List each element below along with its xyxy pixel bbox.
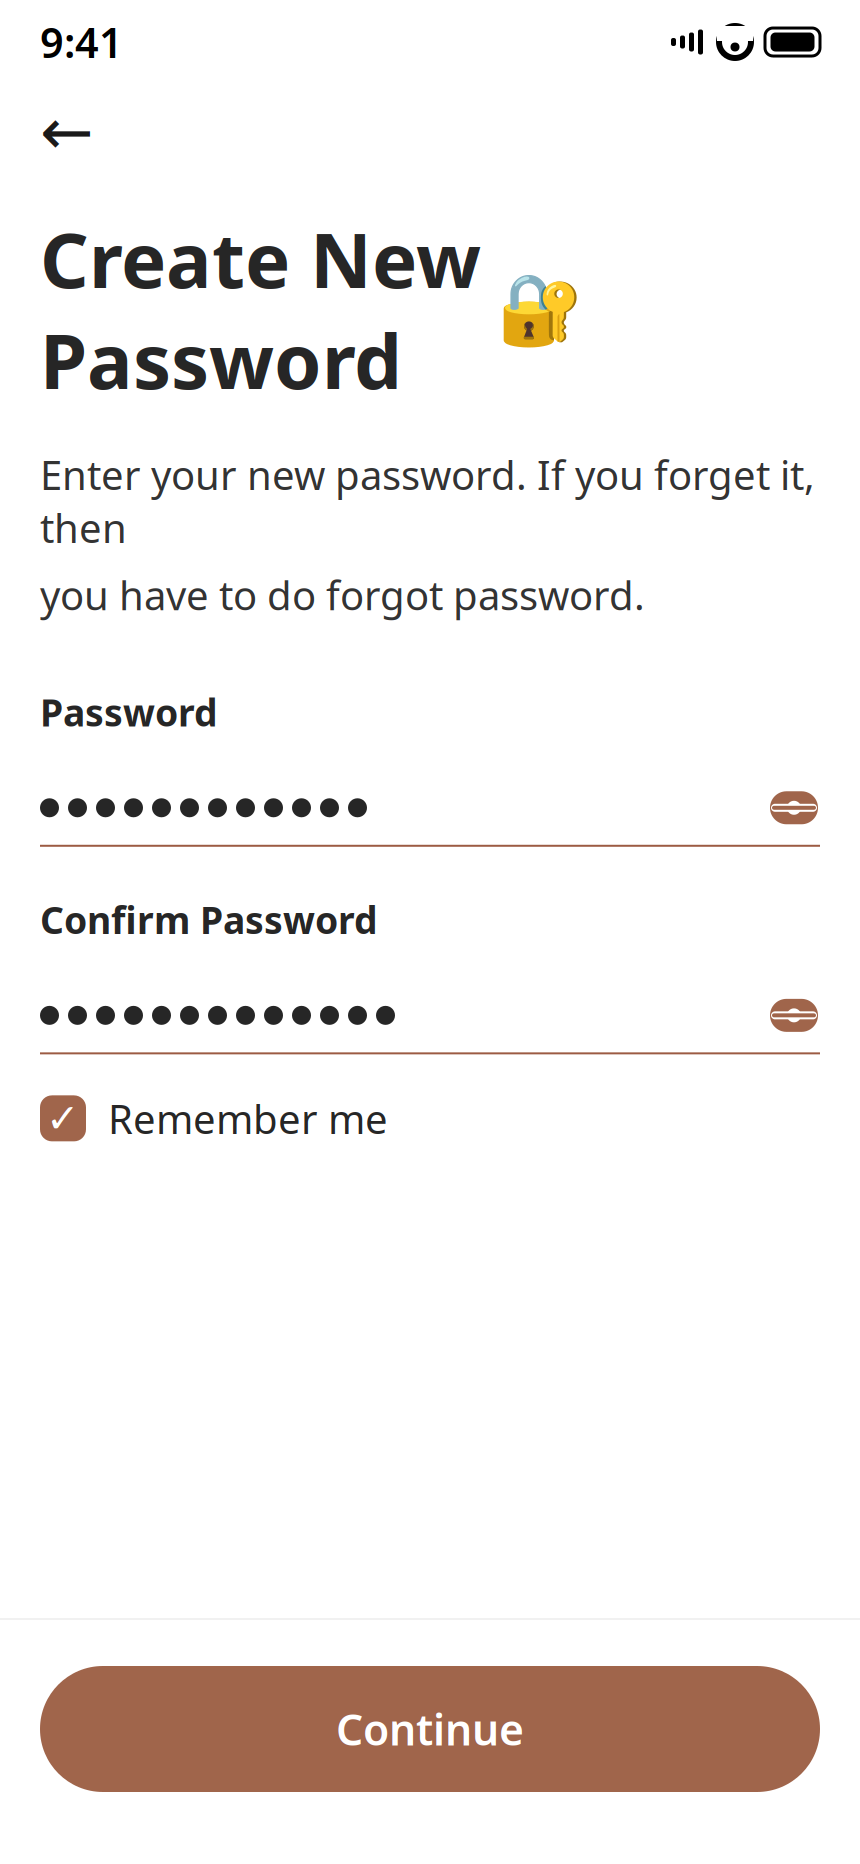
button[interactable]: ✓ bbox=[40, 1090, 820, 1146]
staticText: you have to do forgot password. bbox=[40, 568, 645, 621]
staticText: Enter your new password. If you forget i… bbox=[40, 448, 815, 554]
staticText: ← bbox=[40, 96, 94, 168]
staticText: 🔐 bbox=[497, 269, 583, 348]
button[interactable]: Continue bbox=[40, 1666, 820, 1792]
staticText: Continue bbox=[336, 1701, 524, 1757]
staticText: Confirm Password bbox=[40, 895, 378, 944]
staticText: ✓ bbox=[46, 1096, 80, 1141]
staticText: Create New Password bbox=[40, 208, 481, 410]
button[interactable]: Back bbox=[40, 104, 100, 160]
staticText: Password bbox=[40, 687, 218, 737]
staticText: 9:41 bbox=[40, 15, 123, 69]
staticText: Remember me bbox=[108, 1092, 388, 1145]
button[interactable]: Show confirm password bbox=[768, 990, 820, 1040]
button[interactable]: Show password bbox=[768, 783, 820, 833]
